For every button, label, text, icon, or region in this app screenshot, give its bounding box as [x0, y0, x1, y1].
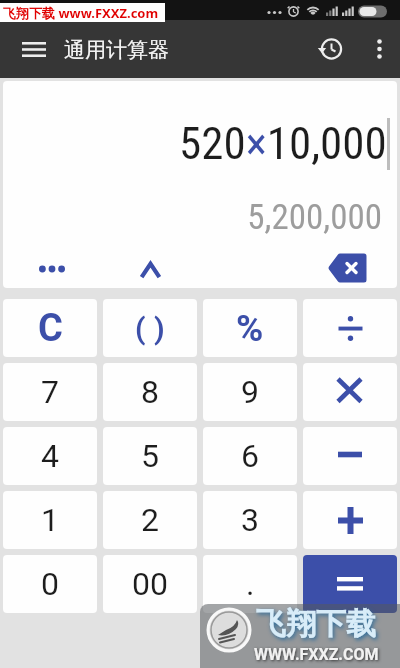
staticText: 3: [241, 501, 259, 539]
button[interactable]: [313, 31, 349, 67]
staticText: 7: [41, 373, 59, 411]
staticText: 1: [41, 501, 59, 539]
staticText: 5: [141, 437, 159, 475]
staticText: WWW.FXXZ.COM: [254, 645, 379, 664]
staticText: 飞翔下载: [256, 605, 376, 643]
button[interactable]: (: [103, 299, 197, 357]
button[interactable]: 3: [203, 491, 297, 549]
staticText: 2: [141, 501, 159, 539]
staticText: (: [135, 311, 146, 346]
staticText: 0: [41, 565, 59, 603]
button[interactable]: 1: [3, 491, 97, 549]
button[interactable]: 9: [203, 363, 297, 421]
button[interactable]: [14, 35, 54, 63]
button[interactable]: 0: [3, 555, 97, 613]
button[interactable]: [303, 555, 397, 613]
button[interactable]: %: [203, 299, 297, 357]
staticText: 9: [241, 373, 259, 411]
staticText: 520×10,000: [179, 117, 387, 170]
button[interactable]: 6: [203, 427, 297, 485]
staticText: 飞翔下载 www.FXXZ.com: [3, 4, 159, 22]
button[interactable]: [27, 253, 77, 285]
staticText: %: [236, 307, 264, 350]
button[interactable]: [303, 427, 397, 485]
button[interactable]: 5: [103, 427, 197, 485]
staticText: .: [246, 565, 255, 603]
button[interactable]: 2: [103, 491, 197, 549]
staticText: 4: [41, 437, 59, 475]
staticText: 00: [132, 565, 168, 603]
staticText: 6: [241, 437, 259, 475]
staticText: 5,200,000: [3, 197, 382, 238]
button[interactable]: [303, 363, 397, 421]
button[interactable]: 8: [103, 363, 197, 421]
button[interactable]: [303, 299, 397, 357]
button[interactable]: [125, 253, 175, 285]
button[interactable]: .: [203, 555, 297, 613]
button[interactable]: 00: [103, 555, 197, 613]
staticText: ): [154, 311, 165, 346]
button[interactable]: [361, 31, 397, 67]
button[interactable]: [303, 491, 397, 549]
staticText: C: [38, 306, 63, 351]
button[interactable]: 7: [3, 363, 97, 421]
staticText: 8: [141, 373, 159, 411]
staticText: 通用计算器: [64, 37, 169, 63]
button[interactable]: [320, 249, 376, 287]
button[interactable]: 4: [3, 427, 97, 485]
button[interactable]: C: [3, 299, 97, 357]
